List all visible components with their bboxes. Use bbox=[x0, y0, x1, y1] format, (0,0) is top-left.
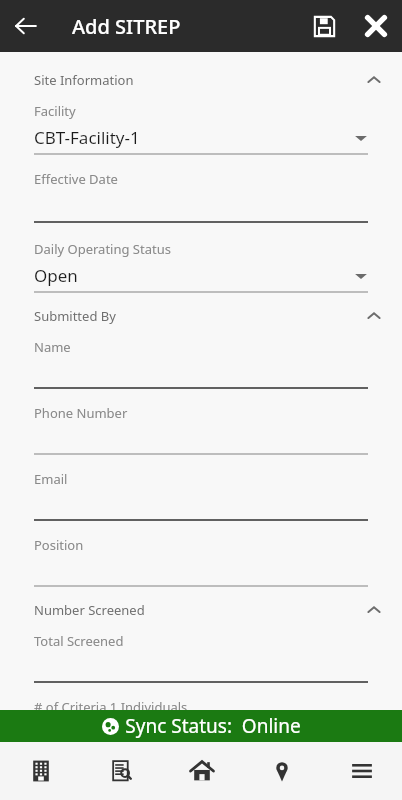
staticText: Add SITREP bbox=[72, 13, 181, 40]
staticText: Sync Status: Online bbox=[125, 713, 301, 739]
button[interactable]: Facilities bbox=[0, 742, 81, 800]
staticText: # of Criteria 1 Individuals bbox=[34, 698, 188, 710]
button[interactable]: Sync Status: Online bbox=[0, 710, 402, 742]
button[interactable]: Reports bbox=[81, 742, 162, 800]
button[interactable]: Home bbox=[162, 742, 242, 800]
button[interactable]: Map bbox=[242, 742, 322, 800]
staticText: Email bbox=[34, 470, 68, 488]
button[interactable]: Save bbox=[298, 0, 350, 52]
button[interactable]: Number Screened bbox=[0, 600, 402, 620]
button[interactable]: CBT-Facility-1 bbox=[0, 126, 402, 149]
button[interactable]: Open bbox=[0, 264, 402, 287]
staticText: Name bbox=[34, 338, 71, 356]
button[interactable]: Submitted By bbox=[0, 306, 402, 326]
staticText: Daily Operating Status bbox=[34, 240, 171, 258]
button[interactable]: Menu bbox=[322, 742, 402, 800]
staticText: Effective Date bbox=[34, 170, 118, 188]
staticText: Phone Number bbox=[34, 404, 128, 422]
staticText: Open bbox=[34, 264, 78, 287]
staticText: Site Information bbox=[34, 71, 134, 89]
button[interactable]: Back bbox=[0, 0, 52, 52]
staticText: CBT-Facility-1 bbox=[34, 126, 140, 149]
staticText: Position bbox=[34, 536, 84, 554]
staticText: Total Screened bbox=[34, 632, 124, 650]
button[interactable]: Close bbox=[350, 0, 402, 52]
staticText: Facility bbox=[34, 102, 76, 120]
staticText: Number Screened bbox=[34, 601, 145, 619]
staticText: Submitted By bbox=[34, 307, 116, 325]
button[interactable]: Site Information bbox=[0, 70, 402, 90]
